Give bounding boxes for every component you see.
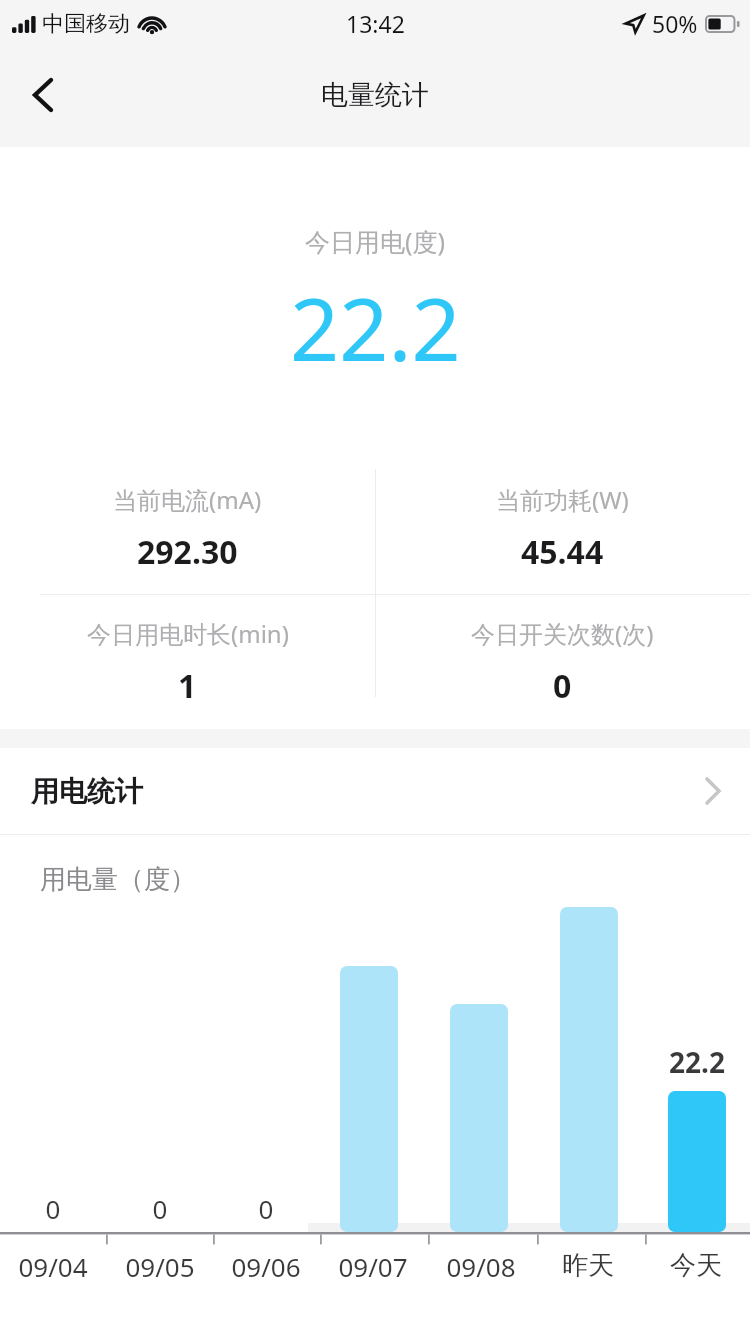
staticText: 今天	[641, 1249, 750, 1282]
staticText: 0	[135, 1191, 185, 1226]
button[interactable]: 当前电流(mA)	[0, 462, 375, 595]
staticText: 今日用电时长(min)	[87, 617, 289, 650]
staticText: 昨天	[533, 1249, 643, 1282]
staticText: 09/06	[211, 1249, 321, 1284]
staticText: 当前功耗(W)	[496, 483, 629, 516]
staticText: 0	[241, 1191, 291, 1226]
staticText: 292.30	[137, 530, 238, 574]
staticText: 09/07	[318, 1249, 428, 1284]
button[interactable]: 今日开关次数(次)	[375, 595, 750, 729]
staticText: 50%	[652, 8, 698, 39]
staticText: 0	[553, 664, 572, 708]
staticText: 今日用电(度)	[305, 224, 446, 258]
button[interactable]: 用电统计	[0, 748, 750, 834]
staticText: 09/05	[105, 1249, 215, 1284]
button[interactable]: 当前功耗(W)	[375, 462, 750, 595]
staticText: 0	[28, 1191, 78, 1226]
staticText: 用电量（度）	[40, 863, 196, 896]
staticText: 22.2	[290, 269, 461, 386]
staticText: 22.2	[642, 1043, 750, 1081]
staticText: 今日开关次数(次)	[471, 617, 654, 650]
button[interactable]: Back	[12, 66, 74, 128]
staticText: 当前电流(mA)	[113, 483, 262, 516]
staticText: 13:42	[346, 8, 405, 39]
staticText: 用电统计	[31, 774, 143, 809]
staticText: 09/08	[426, 1249, 536, 1284]
button[interactable]: 今日用电时长(min)	[0, 595, 375, 729]
staticText: 电量统计	[321, 78, 429, 112]
staticText: 1	[178, 664, 197, 708]
staticText: 中国移动	[42, 10, 130, 38]
staticText: 09/04	[0, 1249, 108, 1284]
staticText: 45.44	[521, 530, 604, 574]
